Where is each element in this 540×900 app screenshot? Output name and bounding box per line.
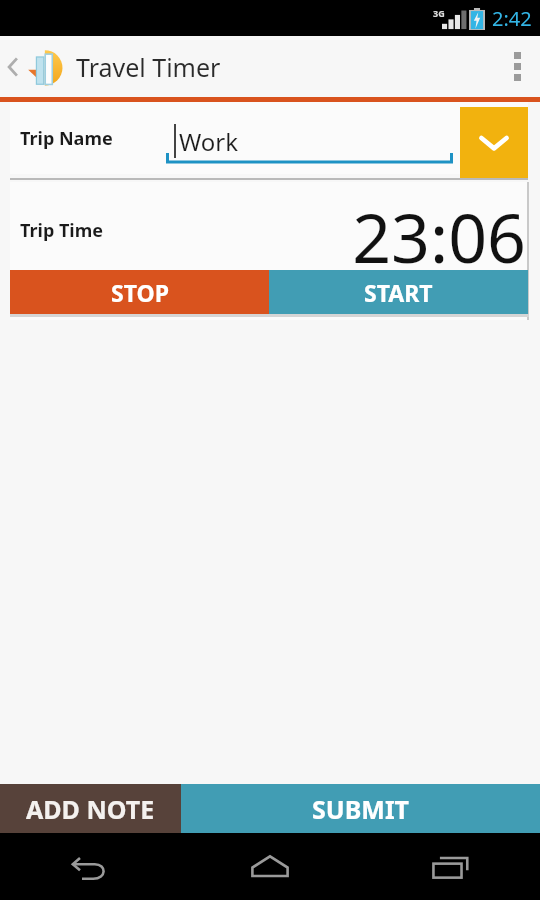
staticText: 23:06 xyxy=(352,190,526,270)
staticText: SUBMIT xyxy=(312,792,410,826)
staticText: Trip Name xyxy=(20,126,113,151)
staticText: Work xyxy=(179,125,239,158)
button[interactable]: Home xyxy=(180,833,360,900)
button[interactable]: More options xyxy=(494,36,540,97)
staticText: ADD NOTE xyxy=(26,792,155,826)
button[interactable]: Recent apps xyxy=(360,833,540,900)
button[interactable]: STOP xyxy=(10,270,269,314)
button[interactable]: Back xyxy=(0,833,180,900)
button[interactable]: Navigate up xyxy=(0,39,70,95)
button[interactable]: ADD NOTE xyxy=(0,784,181,833)
staticText: 2:42 xyxy=(492,5,532,32)
button[interactable]: Work xyxy=(166,117,453,165)
button[interactable]: START xyxy=(269,270,528,314)
staticText: START xyxy=(364,277,433,308)
staticText: Travel Timer xyxy=(76,50,221,84)
staticText: 3G xyxy=(433,7,445,19)
button[interactable]: SUBMIT xyxy=(181,784,540,833)
button[interactable]: Select trip xyxy=(460,107,528,179)
staticText: STOP xyxy=(111,277,169,308)
staticText: Trip Time xyxy=(20,218,104,243)
